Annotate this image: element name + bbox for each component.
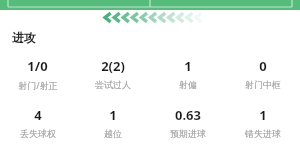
button[interactable]: 0.63 xyxy=(150,105,225,140)
staticText: 1/0 xyxy=(27,57,48,75)
staticText: 2(2) xyxy=(101,57,125,75)
staticText: 射门/射正 xyxy=(18,79,58,91)
staticText: 1 xyxy=(184,57,192,75)
staticText: 进攻 xyxy=(12,30,36,45)
staticText: 射偏 xyxy=(179,79,197,90)
button[interactable]: 1 xyxy=(225,105,300,140)
button[interactable]: 1 xyxy=(150,56,225,91)
staticText: 射门中框 xyxy=(245,79,281,90)
staticText: 越位 xyxy=(104,128,122,139)
other: Attack direction xyxy=(100,12,200,23)
staticText: 0.63 xyxy=(175,106,201,124)
staticText: 4 xyxy=(34,106,42,124)
staticText: 0 xyxy=(259,57,267,75)
staticText: 1 xyxy=(109,106,117,124)
button[interactable]: 1 xyxy=(75,105,150,140)
staticText: 1 xyxy=(259,106,267,124)
staticText: 预期进球 xyxy=(170,128,206,139)
staticText: 尝试过人 xyxy=(95,79,131,90)
button[interactable]: 1/0 xyxy=(0,56,75,92)
staticText: 丢失球权 xyxy=(20,128,56,139)
button[interactable]: 4 xyxy=(0,105,75,140)
button[interactable]: 0 xyxy=(225,56,300,91)
button[interactable]: 2(2) xyxy=(75,56,150,91)
staticText: 错失进球 xyxy=(245,128,281,139)
